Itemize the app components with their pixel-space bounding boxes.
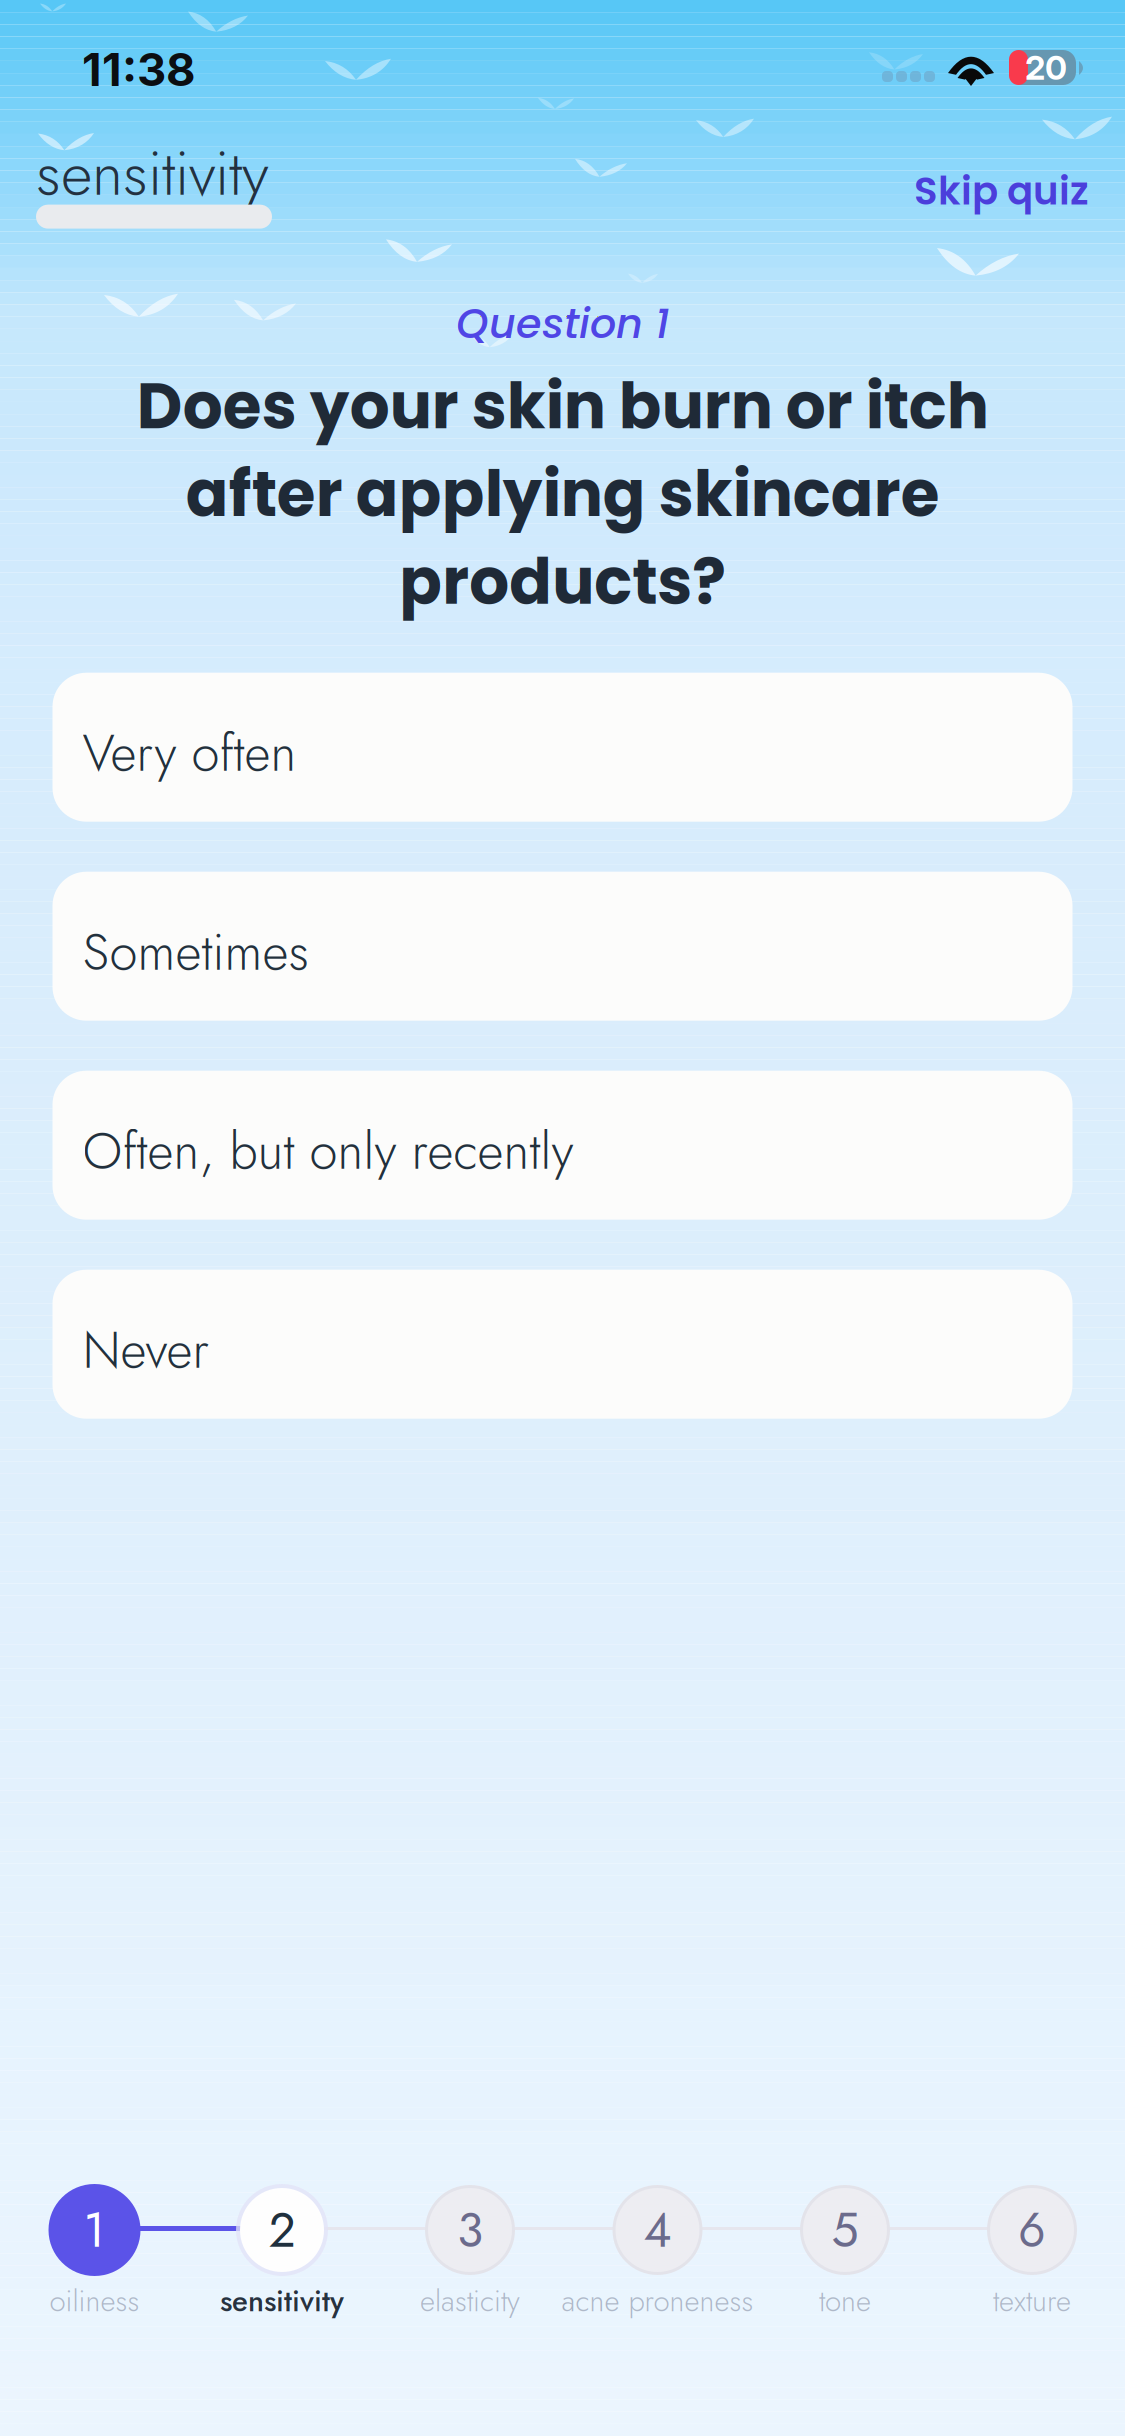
button[interactable]: Often, but only recently <box>52 1071 1072 1220</box>
staticText: Sometimes <box>82 916 308 989</box>
staticText: Often, but only recently <box>82 1115 573 1188</box>
button[interactable]: 6 <box>882 2182 1125 2328</box>
staticText: Skip quiz <box>914 164 1089 218</box>
button[interactable]: 3 <box>320 2182 620 2328</box>
button[interactable]: 5 <box>695 2182 995 2328</box>
button[interactable]: 1 <box>0 2182 244 2328</box>
staticText: tone <box>819 2280 871 2322</box>
staticText: 1 <box>83 2195 105 2265</box>
staticText: Does your skin burn or itch after applyi… <box>136 362 988 626</box>
button[interactable]: Very often <box>52 673 1072 822</box>
staticText: acne proneness <box>561 2280 753 2322</box>
staticText: Question 1 <box>456 295 669 352</box>
staticText: oiliness <box>49 2280 139 2322</box>
button[interactable]: Skip quiz <box>906 154 1097 228</box>
staticText: Never <box>82 1314 208 1387</box>
staticText: Very often <box>82 717 296 790</box>
button[interactable]: Sometimes <box>52 872 1072 1021</box>
staticText: sensitivity <box>36 129 269 218</box>
staticText: 3 <box>457 2195 483 2265</box>
staticText: 20 <box>1025 47 1067 88</box>
staticText: texture <box>993 2280 1071 2322</box>
staticText: elasticity <box>420 2280 520 2322</box>
staticText: 4 <box>643 2195 671 2265</box>
button[interactable]: 4 <box>507 2182 807 2328</box>
staticText: sensitivity <box>220 2280 344 2322</box>
staticText: 2 <box>268 2195 295 2265</box>
staticText: 6 <box>1018 2195 1046 2265</box>
button[interactable]: Never <box>52 1270 1072 1419</box>
staticText: 11:38 <box>82 42 196 97</box>
button[interactable]: 2 <box>132 2182 432 2328</box>
staticText: 5 <box>831 2195 858 2265</box>
